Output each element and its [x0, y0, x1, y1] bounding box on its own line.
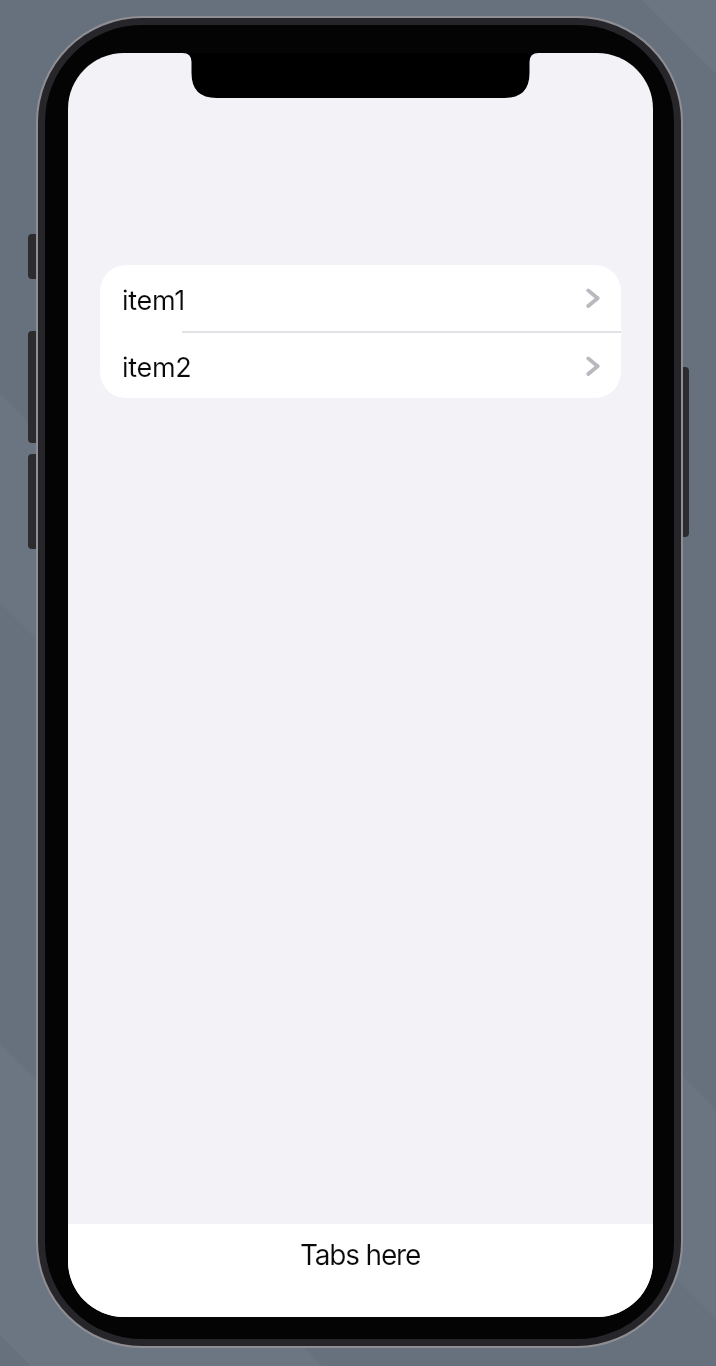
staticText: Tabs here — [300, 1238, 421, 1272]
button[interactable]: Tabs here — [68, 1224, 653, 1317]
button[interactable]: item2 — [100, 333, 621, 398]
staticText: item2 — [122, 351, 192, 384]
button[interactable]: item1 — [100, 265, 621, 331]
staticText: item1 — [122, 284, 185, 317]
